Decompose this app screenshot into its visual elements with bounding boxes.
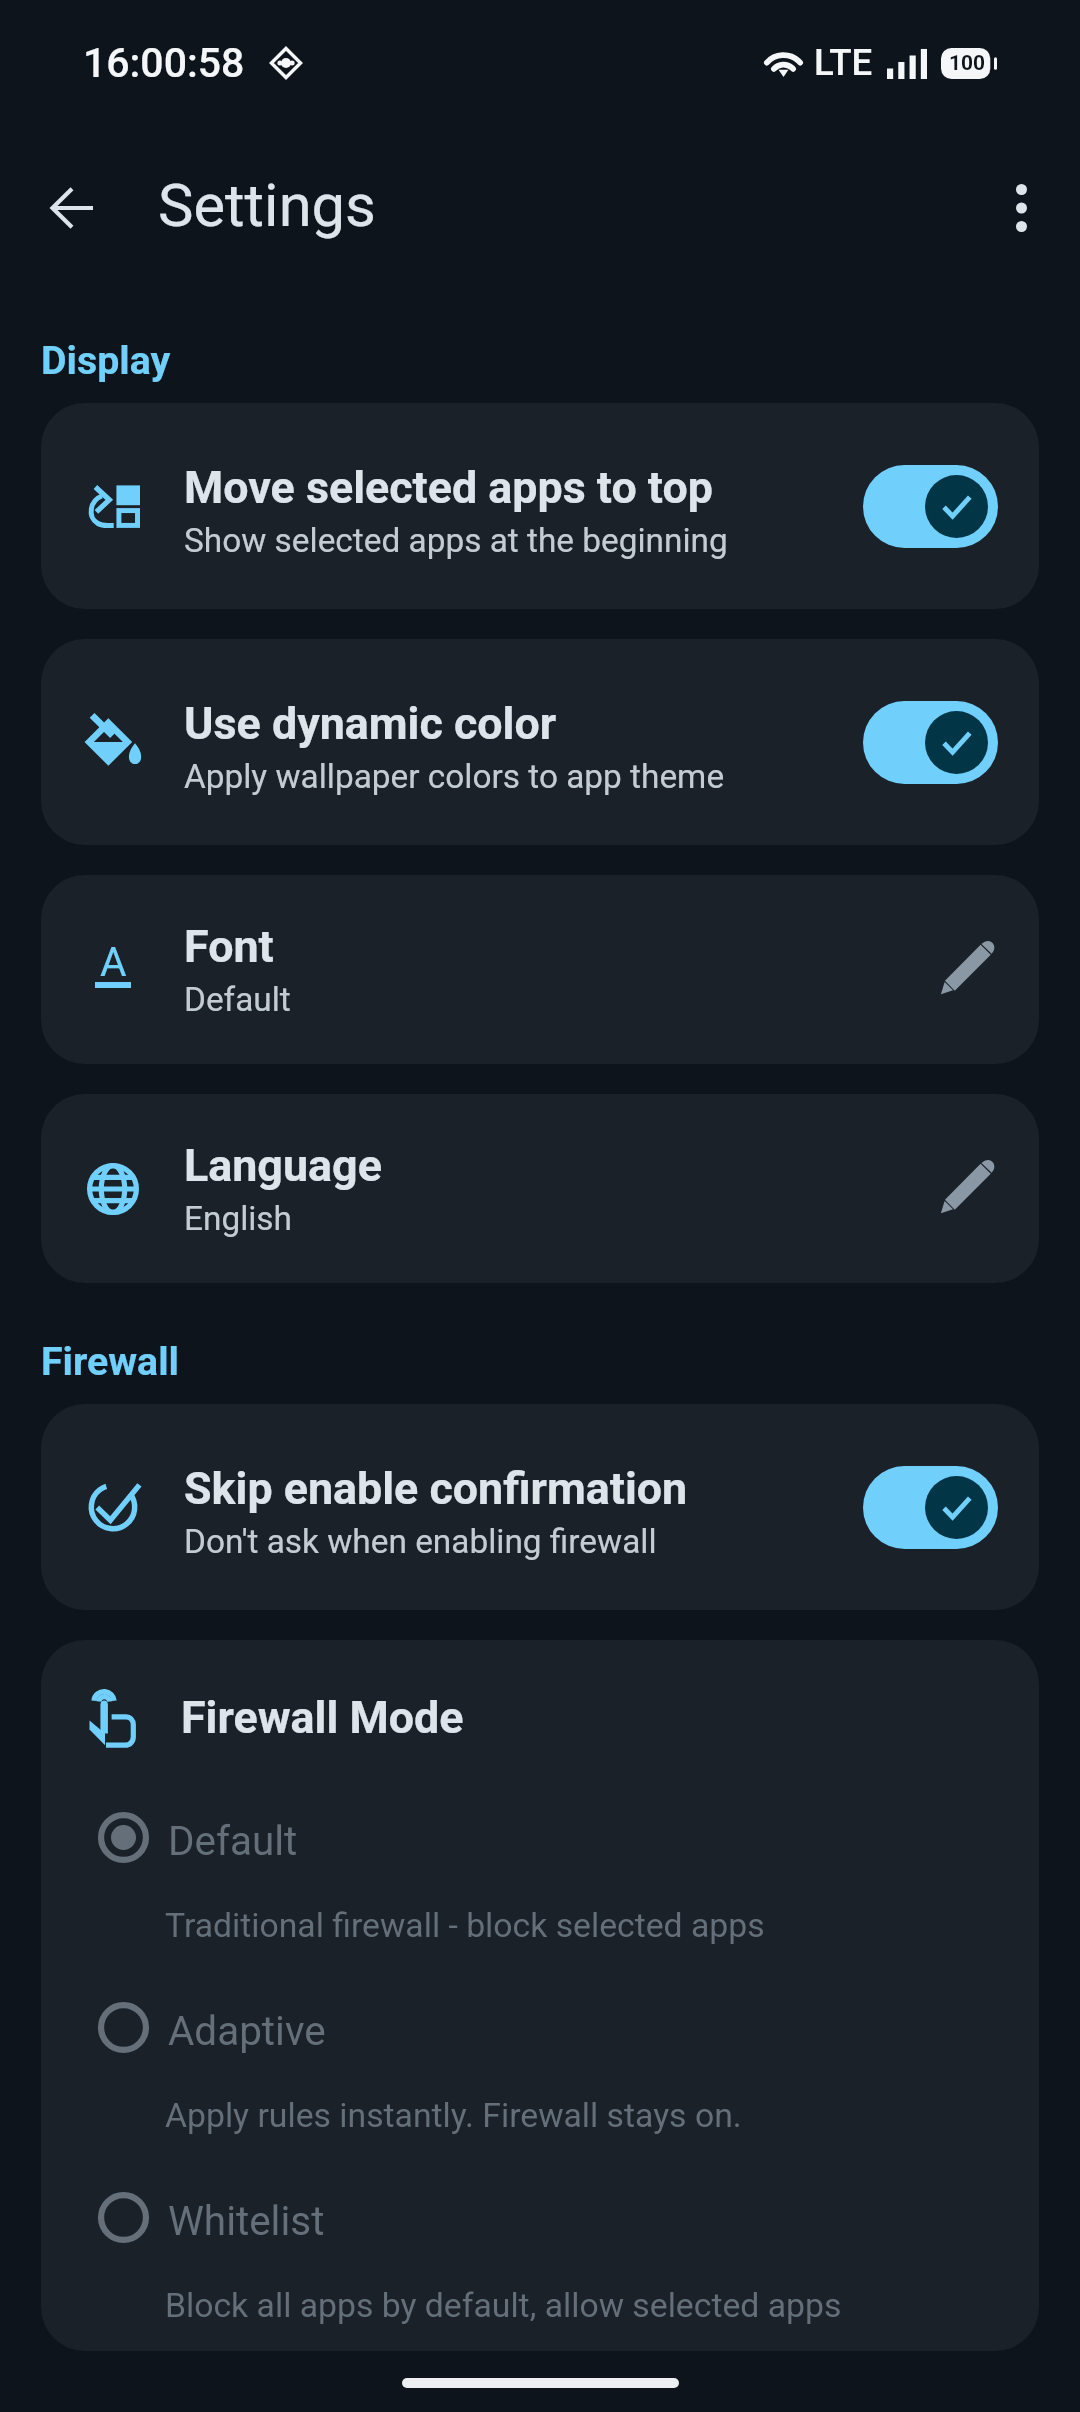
button[interactable]: Language <box>41 1094 1039 1283</box>
staticText: Settings <box>158 171 376 241</box>
button[interactable]: Toggle setting <box>863 1466 998 1549</box>
staticText: Display <box>41 338 171 384</box>
button[interactable]: Toggle setting <box>863 701 998 784</box>
staticText: 100 <box>949 51 985 75</box>
staticText: Whitelist <box>168 2197 325 2244</box>
staticText: Block all apps by default, allow selecte… <box>165 2286 842 2326</box>
button[interactable]: More options <box>962 149 1080 267</box>
staticText: 16:00:58 <box>83 39 245 87</box>
staticText: Default <box>184 980 291 1019</box>
button[interactable]: Back <box>13 149 131 267</box>
staticText: Firewall <box>41 1339 179 1385</box>
staticText: English <box>184 1199 292 1238</box>
button[interactable]: Use dynamic color <box>41 639 1039 845</box>
staticText: Apply wallpaper colors to app theme <box>184 757 725 796</box>
button[interactable]: Move selected apps to top <box>41 403 1039 609</box>
staticText: Skip enable confirmation <box>184 1462 688 1515</box>
button[interactable]: Skip enable confirmation <box>41 1404 1039 1610</box>
staticText: Don't ask when enabling firewall <box>184 1522 657 1561</box>
button[interactable]: Whitelist <box>41 2175 1039 2351</box>
staticText: Show selected apps at the beginning <box>184 521 728 560</box>
staticText: LTE <box>814 41 873 84</box>
button[interactable]: Default <box>41 1795 1039 1985</box>
button[interactable]: Adaptive <box>41 1985 1039 2175</box>
button[interactable]: Edit <box>906 1131 1022 1247</box>
button[interactable]: Toggle setting <box>863 465 998 548</box>
staticText: Default <box>168 1817 298 1864</box>
staticText: Use dynamic color <box>184 697 557 750</box>
staticText: Apply rules instantly. Firewall stays on… <box>165 2096 742 2136</box>
staticText: Adaptive <box>168 2007 326 2054</box>
staticText: Font <box>184 920 274 973</box>
staticText: Move selected apps to top <box>184 461 713 514</box>
staticText: A <box>100 938 127 982</box>
staticText: Language <box>184 1139 382 1192</box>
staticText: Firewall Mode <box>181 1691 464 1744</box>
button[interactable]: A <box>41 875 1039 1064</box>
button[interactable]: Edit <box>906 912 1022 1028</box>
staticText: Traditional firewall - block selected ap… <box>165 1906 765 1946</box>
